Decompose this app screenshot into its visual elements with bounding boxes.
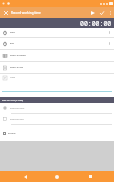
button[interactable]: Rate per unit bbox=[0, 114, 114, 124]
button[interactable]: Home bbox=[49, 171, 65, 182]
staticText: Start bbox=[10, 31, 16, 34]
staticText: 00:00:00 bbox=[80, 19, 112, 28]
button[interactable]: Rate per hour bbox=[0, 103, 114, 113]
staticText: Rate per hour bbox=[10, 107, 25, 110]
button[interactable]: Recent apps bbox=[82, 171, 98, 182]
staticText: Select a task bbox=[10, 66, 23, 69]
staticText: Record working time bbox=[11, 11, 41, 15]
button[interactable]: Back bbox=[17, 171, 33, 182]
button[interactable]: Start timer bbox=[88, 7, 97, 18]
button[interactable]: Start bbox=[0, 28, 114, 37]
button[interactable]: More options bbox=[106, 7, 114, 18]
staticText: Rate per hour (0 units) bbox=[2, 99, 24, 102]
staticText: Note bbox=[10, 76, 16, 79]
staticText: Rate per unit bbox=[10, 118, 24, 121]
staticText: Select a project bbox=[10, 54, 26, 57]
button[interactable]: Select a project bbox=[0, 50, 114, 61]
button[interactable]: archive bbox=[0, 125, 114, 141]
button[interactable]: Select a task bbox=[0, 62, 114, 73]
staticText: archive bbox=[8, 132, 16, 135]
button[interactable]: End bbox=[0, 38, 114, 49]
button[interactable]: Close bbox=[0, 7, 11, 18]
staticText: End bbox=[10, 42, 14, 45]
button[interactable]: Save bbox=[97, 7, 106, 18]
button[interactable]: Note bbox=[0, 74, 114, 92]
